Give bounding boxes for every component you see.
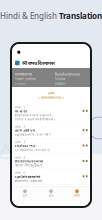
staticText: ॥ श्रीरामचरितमानस ॥ [38,96,64,99]
button[interactable]: श्लोक - 4 [12,154,90,169]
staticText: श्रद्धाविश्वासरूपिणौ। याभ्यां विना न [14,133,50,136]
button[interactable]: श्री रामचरितमानस [12,58,90,68]
staticText: सूची [22,194,27,197]
button[interactable]: श्लोक - 3 [12,139,90,154]
staticText: वन्दे बोधमयं नित्यं [14,144,35,148]
staticText: भवानी शंकरौ वन्दे [14,129,34,133]
staticText: विहारिणौ। वन्दे विशुद्धविज्ञानौ [14,164,42,167]
staticText: श्लोक - 3 [14,140,25,144]
button[interactable]: खोज [38,186,64,200]
staticText: सीतारामगुणग्रामपुण्यारण्य [14,160,43,163]
staticText: श्लोक - 4 [14,156,25,159]
staticText: श्लोक [48,92,54,95]
staticText: Tulsidas [55,77,65,81]
button[interactable]: सेटिंग [64,186,90,200]
staticText: Hindi & English [0,11,59,21]
staticText: श्लोक - 1 [14,106,25,109]
staticText: Baalkand [55,82,66,85]
staticText: गोस्वामी तुलसीदास [15,77,36,81]
staticText: श्लोक - 5 [14,171,25,175]
staticText: मंगलानां च कर्त्तारौ वन्दे वाणीविनायकौ॥ [14,118,55,121]
button[interactable]: श्लोक - 5 [12,169,90,185]
staticText: बालकाण्ड [15,82,25,85]
button[interactable]: सूची [12,186,38,200]
staticText: रामचरितमानस [15,73,32,76]
staticText: Ramcharitmanas [55,73,80,76]
staticText: गुरुं शंकररूपिणम्। यमाश्रितो हि [14,148,49,152]
staticText: उद्भवस्थितिसंहारकारिणीं [14,175,40,179]
staticText: Translation [59,11,102,21]
staticText: क्लेशहारिणीम्। सर्वश्रेयस्करीं [14,179,42,183]
staticText: वर्णानामर्थसंघानां रसानां छन्दसामपि। [14,114,52,117]
staticText: जय श्री राम [14,110,27,113]
staticText: श्री रामचरितमानस [22,59,55,67]
staticText: खोज [48,194,53,197]
staticText: श्लोक - 2 [14,125,25,129]
button[interactable]: श्लोक - 1 [12,104,90,123]
button[interactable]: श्लोक - 2 [12,123,90,139]
staticText: सेटिंग [74,194,80,197]
